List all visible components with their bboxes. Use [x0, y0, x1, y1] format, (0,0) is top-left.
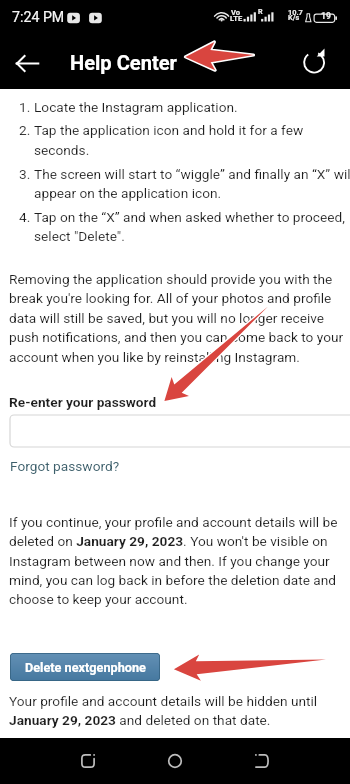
staticText: LTE — [230, 14, 243, 23]
staticText: Forgot password? — [10, 458, 120, 474]
button[interactable]: Delete nextgenphone — [10, 653, 160, 681]
button[interactable]: Navigate up — [9, 45, 46, 82]
staticText: Delete nextgenphone — [25, 660, 146, 675]
staticText: account when you like by reinstalling In… — [9, 349, 300, 365]
staticText: The screen will start to “wiggle” and fi… — [34, 166, 350, 182]
button[interactable]: Recent apps — [70, 743, 106, 779]
staticText: 4. — [19, 209, 31, 225]
staticText: Tap the application icon and hold it for… — [34, 122, 304, 138]
staticText: 2. — [19, 122, 31, 138]
button[interactable]: Back — [244, 743, 280, 779]
staticText: push notifications, and then you can com… — [9, 329, 344, 345]
staticText: Vo — [231, 8, 241, 17]
staticText: Tap on the “X” and when asked whether to… — [34, 209, 345, 225]
staticText: Locate the Instagram application. — [34, 99, 238, 115]
staticText: 10.7 — [288, 8, 303, 17]
staticText: R — [258, 7, 263, 15]
button[interactable]: Re-enter your password — [10, 415, 350, 447]
staticText: choose to keep your account. — [9, 591, 188, 607]
staticText: seconds. — [34, 142, 90, 158]
staticText: 1. — [19, 99, 31, 115]
staticText: Re-enter your password — [9, 394, 157, 410]
staticText: data will still be saved, but you will n… — [9, 310, 325, 326]
staticText: break you're looking for. All of your ph… — [9, 290, 332, 306]
staticText: 19 — [321, 11, 331, 21]
staticText: Your profile and account details will be… — [9, 693, 318, 709]
staticText: appear on the application icon. — [34, 185, 222, 201]
staticText: 7:24 PM — [12, 9, 65, 26]
staticText: Instagram between now and then. If you c… — [9, 553, 330, 569]
button[interactable]: Refresh — [296, 44, 333, 81]
staticText: Help Center — [70, 51, 177, 75]
staticText: Removing the application should provide … — [9, 271, 333, 287]
staticText: January 29, 2023 and deleted on that dat… — [9, 712, 271, 728]
staticText: deleted on January 29, 2023. You won't b… — [9, 533, 328, 549]
staticText: 3. — [19, 166, 31, 182]
staticText: mind, you can log back in before the del… — [9, 572, 337, 588]
staticText: select "Delete". — [34, 228, 125, 244]
staticText: K/s — [288, 13, 300, 22]
staticText: If you continue, your profile and accoun… — [9, 514, 338, 530]
button[interactable]: Home — [157, 743, 193, 779]
button[interactable]: Forgot password? — [10, 458, 120, 474]
